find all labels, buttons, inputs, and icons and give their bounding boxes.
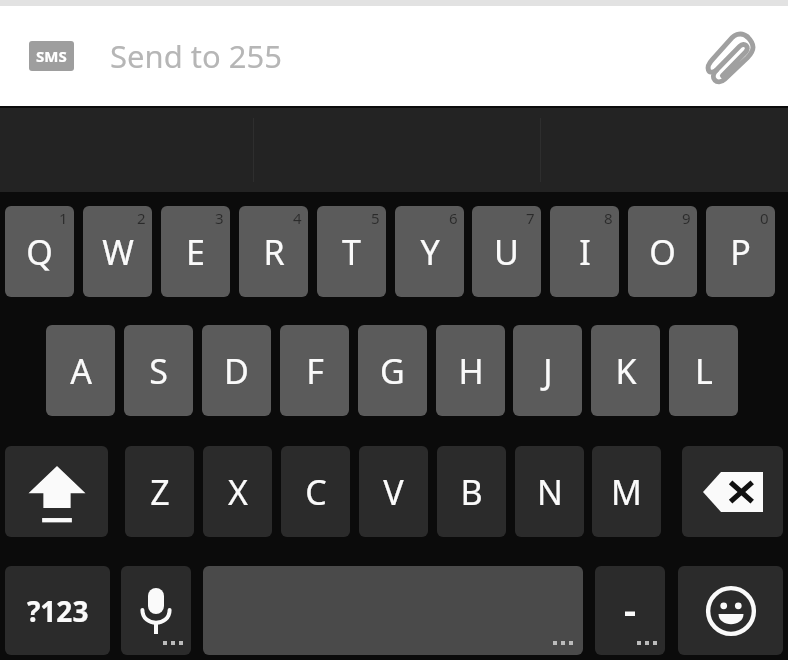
- button[interactable]: O: [628, 206, 697, 297]
- staticText: 1: [59, 208, 68, 228]
- button[interactable]: P: [706, 206, 775, 297]
- staticText: 8: [604, 208, 613, 228]
- staticText: 7: [526, 208, 535, 228]
- button[interactable]: Send to 255: [110, 30, 510, 82]
- staticText: S: [149, 348, 168, 394]
- button[interactable]: E: [161, 206, 230, 297]
- staticText: M: [611, 469, 642, 515]
- staticText: Send to 255: [110, 35, 282, 77]
- staticText: Z: [150, 469, 170, 515]
- button[interactable]: Emoji: [678, 566, 783, 655]
- staticText: 6: [449, 208, 458, 228]
- staticText: U: [494, 229, 519, 275]
- button[interactable]: Voice input: [121, 566, 191, 655]
- button[interactable]: G: [358, 325, 427, 416]
- button[interactable]: D: [202, 325, 271, 416]
- staticText: R: [263, 229, 285, 275]
- button[interactable]: U: [472, 206, 541, 297]
- staticText: B: [460, 469, 483, 515]
- button[interactable]: Q: [5, 206, 74, 297]
- staticText: N: [537, 469, 563, 515]
- staticText: 2: [137, 208, 146, 228]
- staticText: F: [306, 348, 324, 394]
- staticText: D: [224, 348, 249, 394]
- button[interactable]: A: [46, 325, 115, 416]
- button[interactable]: T: [317, 206, 386, 297]
- staticText: 4: [293, 208, 302, 228]
- button[interactable]: M: [592, 446, 661, 537]
- button[interactable]: ?123: [5, 566, 110, 655]
- button[interactable]: Y: [395, 206, 464, 297]
- staticText: Y: [420, 229, 440, 275]
- staticText: V: [383, 469, 404, 515]
- button[interactable]: V: [359, 446, 428, 537]
- staticText: G: [380, 348, 405, 394]
- button[interactable]: K: [591, 325, 660, 416]
- staticText: A: [70, 348, 92, 394]
- button[interactable]: C: [281, 446, 350, 537]
- staticText: 3: [215, 208, 224, 228]
- button[interactable]: Period: [595, 566, 665, 655]
- staticText: 5: [371, 208, 380, 228]
- staticText: I: [579, 229, 591, 275]
- button[interactable]: H: [436, 325, 505, 416]
- staticText: L: [695, 348, 713, 394]
- staticText: ?123: [27, 592, 89, 630]
- staticText: P: [730, 229, 751, 275]
- staticText: Q: [26, 229, 53, 275]
- button[interactable]: W: [83, 206, 152, 297]
- staticText: J: [543, 348, 553, 394]
- button[interactable]: B: [437, 446, 506, 537]
- button[interactable]: Z: [125, 446, 194, 537]
- button[interactable]: Shift: [5, 446, 108, 537]
- staticText: 9: [682, 208, 691, 228]
- button[interactable]: Attach: [700, 22, 768, 90]
- staticText: O: [649, 229, 676, 275]
- button[interactable]: L: [669, 325, 738, 416]
- staticText: T: [342, 229, 361, 275]
- button[interactable]: I: [550, 206, 619, 297]
- staticText: H: [458, 348, 484, 394]
- staticText: E: [186, 229, 205, 275]
- staticText: SMS: [36, 46, 67, 66]
- button[interactable]: X: [203, 446, 272, 537]
- button[interactable]: S: [124, 325, 193, 416]
- staticText: X: [228, 469, 248, 515]
- staticText: C: [305, 469, 327, 515]
- button[interactable]: N: [515, 446, 584, 537]
- staticText: 0: [760, 208, 769, 228]
- staticText: K: [615, 348, 637, 394]
- button[interactable]: F: [280, 325, 349, 416]
- button[interactable]: J: [513, 325, 582, 416]
- button[interactable]: Space: [203, 566, 583, 655]
- staticText: W: [102, 229, 134, 275]
- button[interactable]: R: [239, 206, 308, 297]
- button[interactable]: Backspace: [682, 446, 783, 537]
